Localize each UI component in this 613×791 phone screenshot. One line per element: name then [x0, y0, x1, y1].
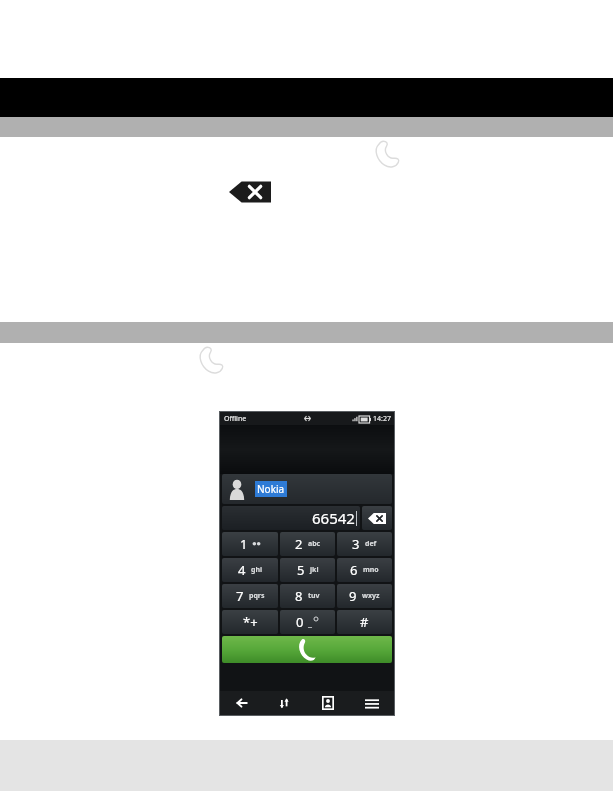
staticText: abc [308, 539, 321, 549]
button[interactable]: 4 [222, 558, 278, 582]
button[interactable]: 8 [280, 584, 335, 608]
button[interactable]: Call [222, 636, 392, 663]
other: Call [374, 142, 400, 168]
button[interactable]: 5 [280, 558, 335, 582]
staticText: pqrs [249, 591, 265, 601]
button[interactable]: 0 [280, 610, 335, 634]
button[interactable]: 6 [337, 558, 392, 582]
staticText: def [365, 539, 377, 549]
staticText: ghi [251, 565, 263, 575]
button[interactable]: Menu [350, 691, 394, 715]
staticText: Nokia [257, 482, 285, 496]
button[interactable]: 9 [337, 584, 392, 608]
staticText: 3 [352, 535, 360, 553]
staticText: *+ [243, 613, 258, 631]
button[interactable]: *+ [222, 610, 278, 634]
button[interactable]: 7 [222, 584, 278, 608]
staticText: wxyz [362, 591, 380, 601]
staticText: Offline [224, 414, 247, 424]
button[interactable]: 3 [337, 532, 392, 556]
staticText: 7 [236, 587, 244, 605]
staticText: 6 [350, 561, 358, 579]
button[interactable]: Backspace [229, 179, 271, 205]
staticText: _ [308, 616, 312, 628]
staticText: 9 [349, 587, 357, 605]
staticText: 8 [295, 587, 303, 605]
staticText: 1 [240, 535, 248, 553]
staticText: # [360, 613, 369, 631]
staticText: 5 [297, 561, 305, 579]
staticText: tuv [308, 591, 320, 601]
other: Call [198, 348, 224, 374]
staticText: 2 [295, 535, 303, 553]
button[interactable]: # [337, 610, 392, 634]
button[interactable]: 66542 [222, 506, 360, 530]
button[interactable]: Back [220, 691, 263, 715]
staticText: 0 [296, 613, 304, 631]
button[interactable]: Nokia [222, 474, 392, 504]
staticText: 14:27 [373, 414, 391, 424]
staticText: 4 [238, 561, 246, 579]
staticText: jkl [310, 565, 319, 575]
button[interactable]: Sort [263, 691, 306, 715]
button[interactable]: Contacts [306, 691, 350, 715]
button[interactable]: 2 [280, 532, 335, 556]
button[interactable]: 1 [222, 532, 278, 556]
staticText: mno [363, 565, 379, 575]
staticText: 66542 [312, 508, 355, 528]
button[interactable]: Backspace [362, 506, 392, 530]
